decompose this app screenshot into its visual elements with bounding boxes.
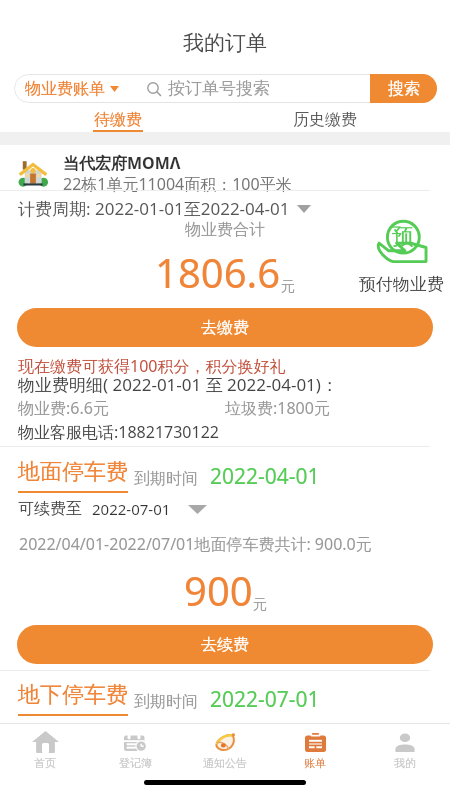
staticText: 地面停车费 [18, 458, 128, 486]
staticText: 现在缴费可获得100积分，积分换好礼 [18, 355, 286, 377]
staticText: 搜索 [388, 79, 420, 99]
staticText: 登记簿 [119, 756, 152, 770]
button[interactable]: 去缴费 [17, 308, 433, 347]
staticText: 2022-04-01 [210, 462, 320, 491]
staticText: 历史缴费 [293, 110, 357, 130]
staticText: 物业费:6.6元 [18, 397, 109, 419]
staticText: 物业费账单 [25, 79, 105, 99]
button[interactable]: 去续费 [17, 625, 433, 664]
staticText: 预付物业费 [359, 274, 444, 295]
button[interactable]: 我的 [360, 724, 450, 800]
button[interactable]: 历史缴费 [289, 106, 361, 134]
staticText: 我的 [394, 756, 416, 770]
button[interactable]: 物业费账单 [25, 79, 119, 99]
staticText: 元 [253, 596, 267, 614]
staticText: 去缴费 [201, 318, 249, 338]
staticText: 账单 [304, 756, 326, 770]
staticText: 元 [281, 278, 295, 296]
button[interactable]: 首页 [0, 724, 90, 800]
staticText: 2022/04/01-2022/07/01地面停车费共计: 900.0元 [19, 533, 372, 555]
staticText: 我的订单 [183, 30, 267, 56]
staticText: 2022-07-01 [210, 685, 320, 714]
staticText: 物业费明细( 2022-01-01 至 2022-04-01)： [18, 373, 338, 396]
staticText: 到期时间 [134, 469, 198, 489]
staticText: 900 [184, 563, 253, 617]
staticText: 通知公告 [203, 756, 247, 770]
staticText: 物业客服电话:18821730122 [18, 421, 219, 443]
staticText: 到期时间 [134, 692, 198, 712]
button[interactable]: 通知公告 [180, 724, 270, 800]
button[interactable]: 待缴费 [86, 106, 150, 134]
staticText: 预 [392, 223, 414, 251]
staticText: 22栋1单元11004面积：100平米 [63, 173, 292, 195]
button[interactable]: 账单 [270, 724, 360, 800]
staticText: 1806.6 [155, 245, 281, 299]
staticText: 首页 [34, 756, 56, 770]
staticText: 计费周期: 2022-01-01至2022-04-01 [18, 197, 290, 220]
staticText: 垃圾费:1800元 [225, 397, 330, 419]
button[interactable]: 登记簿 [90, 724, 180, 800]
staticText: 待缴费 [94, 110, 142, 130]
staticText: 可续费至 [18, 499, 82, 519]
staticText: 物业费合计 [185, 220, 265, 240]
staticText: 当代宏府MOMΛ [63, 152, 181, 174]
staticText: 地下停车费 [18, 681, 128, 709]
staticText: 去续费 [201, 635, 249, 655]
staticText: 2022-07-01 [92, 499, 171, 519]
button[interactable]: 搜索 [370, 74, 437, 103]
staticText: 按订单号搜索 [168, 78, 270, 99]
button[interactable]: 预 [358, 220, 445, 295]
